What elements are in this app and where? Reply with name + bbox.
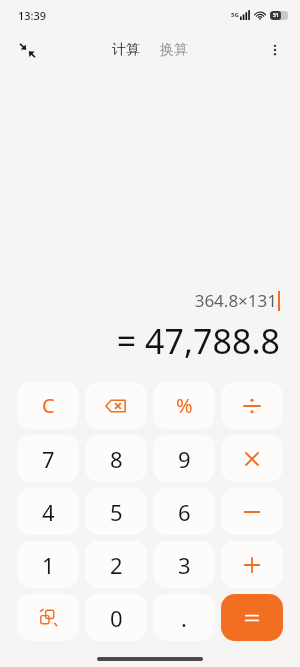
- staticText: 4: [42, 497, 55, 527]
- button[interactable]: Minus: [221, 488, 283, 535]
- staticText: 13:39: [18, 8, 47, 23]
- button[interactable]: 0: [85, 594, 147, 641]
- button[interactable]: Convert: [17, 594, 79, 641]
- button[interactable]: 5: [85, 488, 147, 535]
- staticText: 1: [42, 550, 55, 580]
- staticText: C: [42, 392, 55, 419]
- button[interactable]: 9: [153, 435, 215, 482]
- button[interactable]: Plus: [221, 541, 283, 588]
- staticText: 0: [110, 603, 123, 633]
- staticText: %: [176, 392, 193, 419]
- button[interactable]: Equals: [221, 594, 283, 641]
- staticText: 3: [178, 550, 191, 580]
- staticText: 换算: [160, 41, 188, 59]
- staticText: .: [181, 603, 187, 633]
- button[interactable]: Backspace: [85, 382, 147, 429]
- button[interactable]: 7: [17, 435, 79, 482]
- button[interactable]: .: [153, 594, 215, 641]
- button[interactable]: Multiply: [221, 435, 283, 482]
- staticText: 5G: [231, 11, 239, 19]
- button[interactable]: 6: [153, 488, 215, 535]
- button[interactable]: C: [17, 382, 79, 429]
- button[interactable]: 3: [153, 541, 215, 588]
- button[interactable]: Divide: [221, 382, 283, 429]
- button[interactable]: 计算: [108, 39, 144, 61]
- button[interactable]: 8: [85, 435, 147, 482]
- staticText: 8: [110, 444, 123, 474]
- button[interactable]: 4: [17, 488, 79, 535]
- button[interactable]: %: [153, 382, 215, 429]
- staticText: 364.8×131: [194, 289, 277, 312]
- staticText: 9: [178, 444, 191, 474]
- button[interactable]: 2: [85, 541, 147, 588]
- staticText: 51: [273, 12, 279, 19]
- staticText: 5: [110, 497, 123, 527]
- staticText: 2: [110, 550, 123, 580]
- staticText: 7: [42, 444, 55, 474]
- staticText: 计算: [112, 41, 140, 59]
- button[interactable]: More options: [258, 33, 292, 67]
- button[interactable]: 换算: [156, 39, 192, 61]
- button[interactable]: 1: [17, 541, 79, 588]
- button[interactable]: Collapse: [10, 33, 44, 67]
- staticText: = 47,788.8: [116, 318, 280, 364]
- staticText: 6: [178, 497, 191, 527]
